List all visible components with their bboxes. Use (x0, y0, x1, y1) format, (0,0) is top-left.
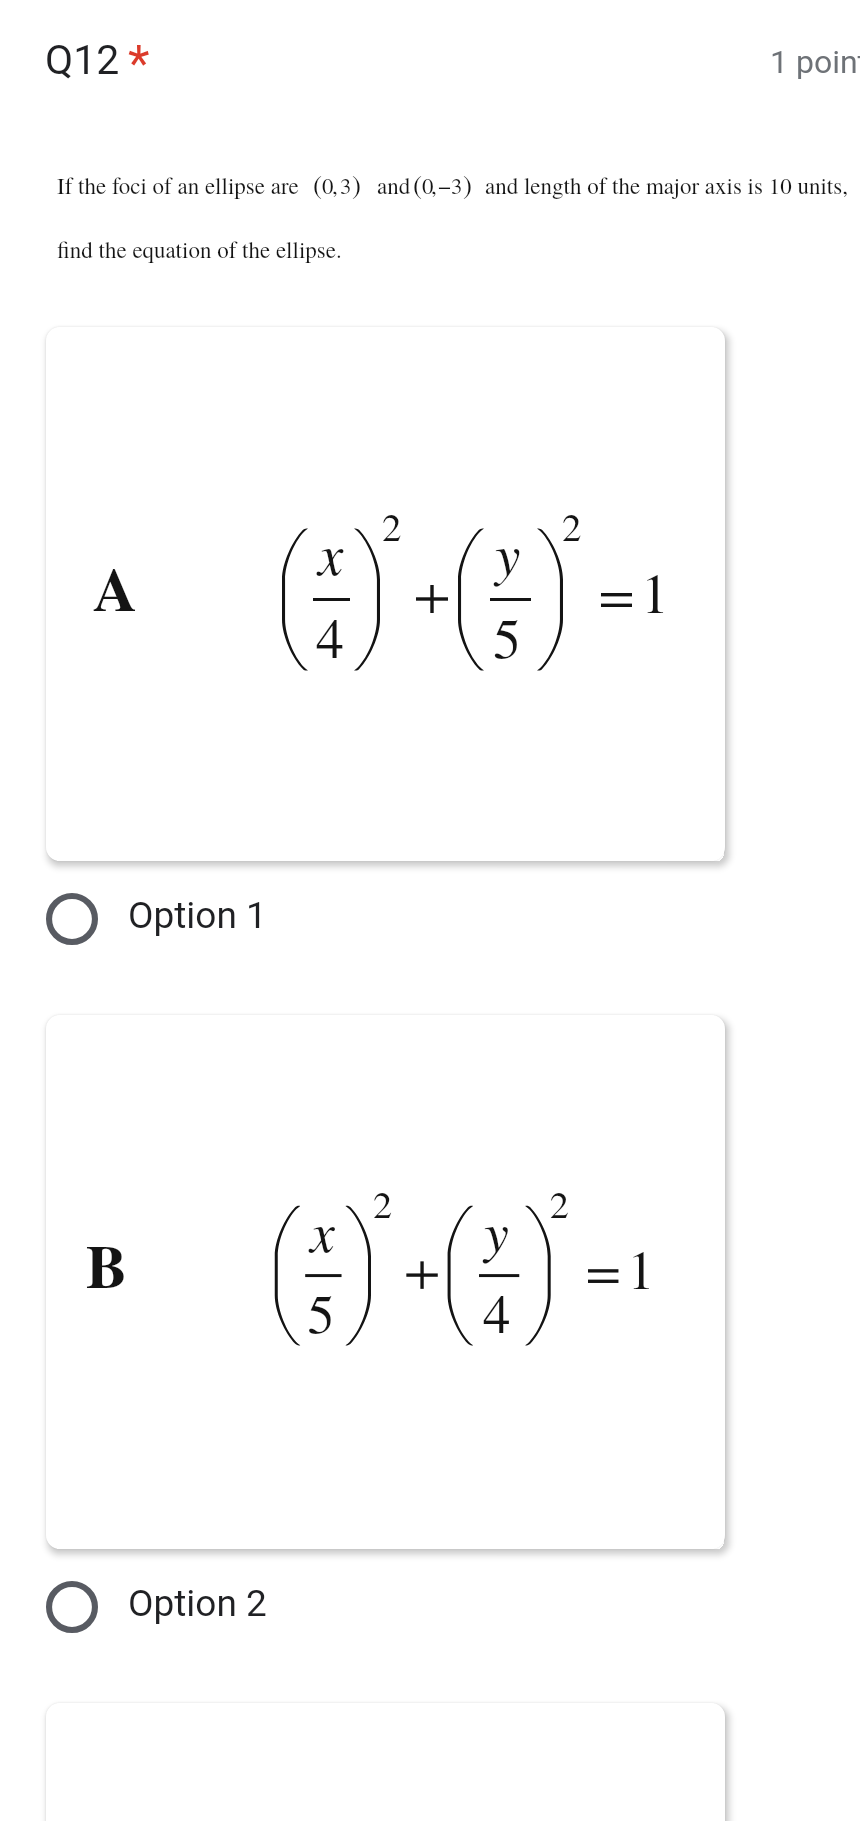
staticText: and (377, 170, 411, 201)
staticText: 1 (641, 554, 669, 629)
staticText: If the foci of an ellipse are (57, 170, 299, 201)
staticText: 0 (322, 170, 334, 201)
staticText: 5 (307, 1275, 335, 1349)
staticText: x (310, 1192, 336, 1266)
staticText: 4 (483, 1275, 510, 1349)
button[interactable]: B (46, 1015, 725, 1549)
staticText: 4 (316, 599, 344, 674)
staticText: ( (313, 166, 322, 202)
staticText: 2 (550, 1178, 569, 1229)
staticText: 2 (373, 1178, 393, 1229)
staticText: 2 (562, 500, 582, 552)
staticText: , (332, 170, 338, 201)
staticText: Q12 (45, 36, 120, 84)
staticText: B (86, 1220, 127, 1309)
staticText: 3 (340, 170, 352, 201)
staticText: 1 (627, 1231, 655, 1304)
staticText: ( (413, 166, 422, 202)
staticText: 0 (422, 170, 434, 201)
button[interactable]: Option 2 (46, 1569, 306, 1645)
staticText: x (318, 514, 344, 590)
staticText: * (128, 35, 150, 94)
staticText: 2 (382, 500, 402, 552)
staticText: and length of the major axis is 10 units… (485, 170, 848, 201)
staticText: y (495, 514, 521, 590)
staticText: 5 (493, 599, 521, 674)
staticText: 1 point (770, 43, 860, 81)
staticText: Option 2 (128, 1582, 267, 1625)
staticText: , (431, 170, 437, 201)
staticText: find the equation of the ellipse. (57, 234, 342, 265)
staticText: Option 1 (128, 894, 267, 937)
staticText: −3 (438, 170, 463, 201)
staticText: ) (463, 166, 472, 202)
button[interactable]: Option 1 (46, 881, 306, 957)
staticText: A (93, 543, 138, 632)
staticText: y (484, 1192, 509, 1266)
button[interactable]: A (46, 327, 725, 861)
staticText: ) (352, 166, 361, 202)
